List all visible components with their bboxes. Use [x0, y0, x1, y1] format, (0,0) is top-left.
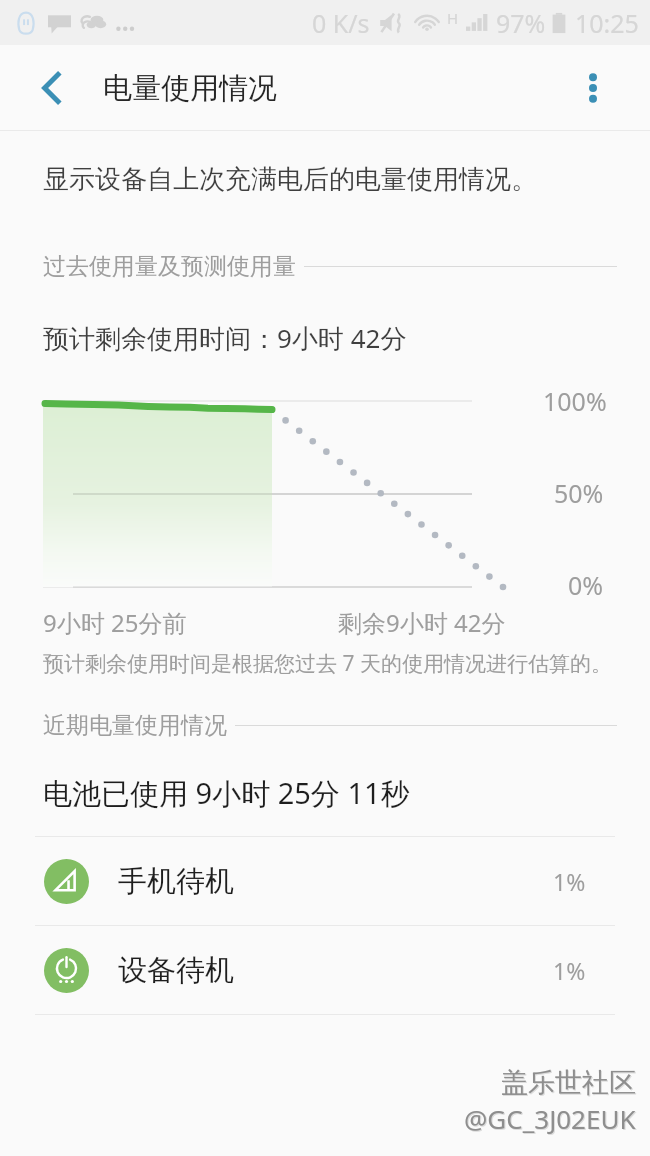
- staticText: 电量使用情况: [103, 70, 277, 107]
- staticText: 近期电量使用情况: [43, 711, 227, 740]
- staticText: 100%: [543, 384, 607, 418]
- staticText: 0 K/s: [312, 6, 370, 40]
- button[interactable]: Back: [27, 64, 75, 112]
- staticText: 50%: [554, 476, 604, 510]
- staticText: 1%: [553, 866, 586, 897]
- staticText: H: [447, 8, 459, 28]
- staticText: 手机待机: [118, 863, 234, 900]
- staticText: 过去使用量及预测使用量: [43, 252, 296, 281]
- button[interactable]: 手机待机: [0, 837, 650, 925]
- staticText: 0%: [568, 568, 604, 602]
- staticText: 预计剩余使用时间是根据您过去 7 天的使用情况进行估算的。: [43, 649, 612, 678]
- staticText: 10:25: [575, 6, 639, 40]
- staticText: 盖乐世社区: [501, 1066, 636, 1100]
- staticText: 显示设备自上次充满电后的电量使用情况。: [43, 163, 537, 196]
- staticText: 预计剩余使用时间：9小时 42分: [43, 320, 407, 356]
- button[interactable]: More options: [569, 64, 617, 112]
- staticText: 9小时 25分前: [43, 606, 187, 638]
- staticText: @GC_3J02EUK: [464, 1101, 636, 1136]
- staticText: 设备待机: [118, 952, 234, 989]
- staticText: 剩余9小时 42分: [338, 606, 506, 638]
- staticText: @GC_3J02EUK: [465, 1102, 637, 1137]
- staticText: 97%: [496, 6, 546, 40]
- staticText: 盖乐世社区: [502, 1067, 637, 1101]
- staticText: 1%: [553, 955, 586, 986]
- button[interactable]: 设备待机: [0, 926, 650, 1014]
- staticText: 电池已使用 9小时 25分 11秒: [43, 773, 410, 813]
